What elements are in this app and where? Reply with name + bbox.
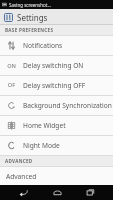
button[interactable]: Home Widget <box>0 116 113 135</box>
staticText: BASE PREFERENCES <box>5 27 54 33</box>
staticText: Night Mode <box>23 141 60 150</box>
staticText: Delay switching ON <box>23 61 84 70</box>
button[interactable]: OFF <box>0 76 113 95</box>
button[interactable]: Night Mode <box>0 136 113 155</box>
staticText: Settings <box>17 12 48 23</box>
button[interactable]: Advanced <box>0 167 113 185</box>
button[interactable]: Back <box>12 185 34 200</box>
button[interactable]: ON <box>0 56 113 75</box>
staticText: Delay switching OFF <box>23 81 86 90</box>
staticText: OFF <box>7 81 16 90</box>
staticText: Saving screenshot... <box>9 2 52 8</box>
staticText: Background Synchronization <box>23 101 112 110</box>
button[interactable]: Recent apps <box>79 185 101 200</box>
button[interactable]: Background Synchronization <box>0 96 113 115</box>
staticText: Advanced <box>6 172 37 181</box>
button[interactable]: App icon, navigate up <box>3 12 14 23</box>
staticText: Notifications <box>23 41 63 50</box>
button[interactable]: Home <box>46 185 68 200</box>
staticText: Home Widget <box>23 121 66 130</box>
staticText: ON <box>7 62 16 70</box>
staticText: ADVANCED <box>5 158 33 164</box>
button[interactable]: Notifications <box>0 36 113 55</box>
